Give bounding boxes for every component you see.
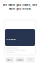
- staticText: Weekly: [16, 58, 23, 61]
- staticText: All: [29, 58, 32, 61]
- staticText: more you know.: [8, 7, 31, 10]
- staticText: The more you listen, the: [2, 3, 37, 7]
- staticText: Listening: [6, 37, 15, 41]
- button[interactable]: Weekly: [15, 57, 24, 62]
- button[interactable]: All: [26, 57, 35, 62]
- button[interactable]: Daily: [5, 57, 14, 62]
- staticText: Daily: [7, 58, 12, 61]
